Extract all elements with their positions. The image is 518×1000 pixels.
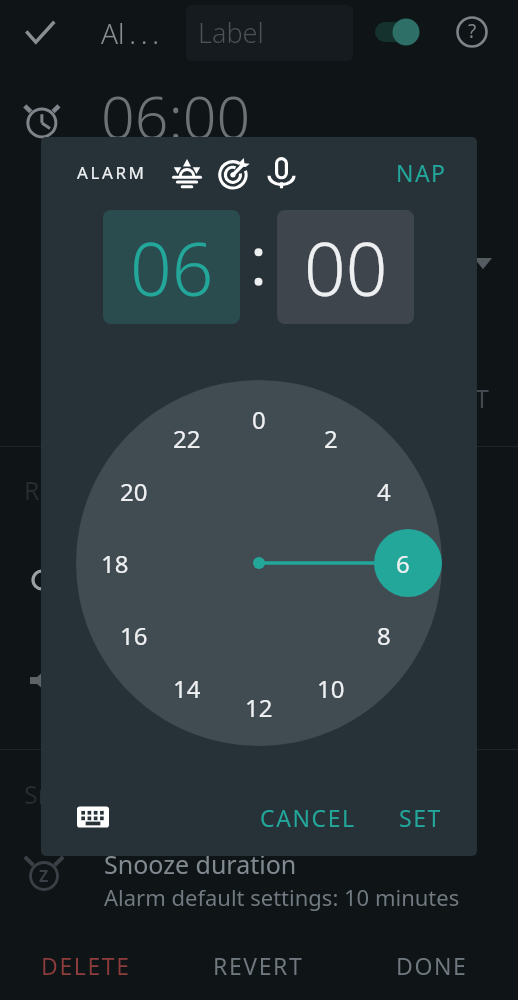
button[interactable]: Confirm xyxy=(18,10,62,54)
staticText: 06:00 xyxy=(101,76,251,156)
button[interactable]: Voice input xyxy=(257,148,305,196)
staticText: Alarm default settings: 10 minutes xyxy=(104,882,460,912)
button[interactable]: Alarm enabled xyxy=(366,8,426,56)
button[interactable]: DONE xyxy=(345,934,518,996)
staticText: 20 xyxy=(120,475,148,508)
staticText: REVERT xyxy=(213,950,304,981)
button[interactable]: Switch to keyboard input xyxy=(69,793,117,841)
staticText: Snooze xyxy=(24,777,110,811)
staticText: NAP xyxy=(396,157,447,188)
button[interactable]: NAP xyxy=(390,148,452,196)
staticText: 2 xyxy=(324,422,338,455)
staticText: 10 xyxy=(317,672,345,705)
button[interactable]: REVERT xyxy=(172,934,345,996)
staticText: ? xyxy=(468,18,477,44)
button[interactable]: Help xyxy=(450,10,494,54)
button[interactable]: SET xyxy=(381,793,461,841)
staticText: 12 xyxy=(245,691,273,724)
staticText: 22 xyxy=(173,422,201,455)
staticText: Snooze duration xyxy=(104,847,297,881)
button[interactable]: Sunrise alarm xyxy=(163,148,211,196)
button[interactable]: DELETE xyxy=(0,934,172,996)
button[interactable]: Label xyxy=(186,5,353,61)
staticText: DELETE xyxy=(41,950,131,981)
staticText: Ringtone xyxy=(24,473,131,507)
staticText: T xyxy=(475,381,489,415)
staticText: 4 xyxy=(377,475,391,508)
button[interactable]: 06 xyxy=(103,210,240,324)
staticText: 0 xyxy=(252,403,266,436)
button[interactable]: Challenge xyxy=(210,148,258,196)
staticText: SET xyxy=(399,802,443,833)
staticText: DONE xyxy=(396,950,468,981)
staticText: 8 xyxy=(377,619,391,652)
button[interactable]: CANCEL xyxy=(245,793,370,841)
staticText: 16 xyxy=(120,619,148,652)
staticText: 18 xyxy=(101,547,129,580)
staticText: Z xyxy=(39,865,49,887)
staticText: 06 xyxy=(130,218,214,317)
staticText: 00 xyxy=(304,218,388,317)
staticText: ALARM xyxy=(77,161,147,184)
button[interactable]: 00 xyxy=(277,210,414,324)
staticText: 6 xyxy=(396,547,410,580)
staticText: 14 xyxy=(173,672,201,705)
staticText: Label xyxy=(198,14,264,51)
staticText: Al . . . xyxy=(101,14,160,52)
staticText: CANCEL xyxy=(260,802,356,833)
